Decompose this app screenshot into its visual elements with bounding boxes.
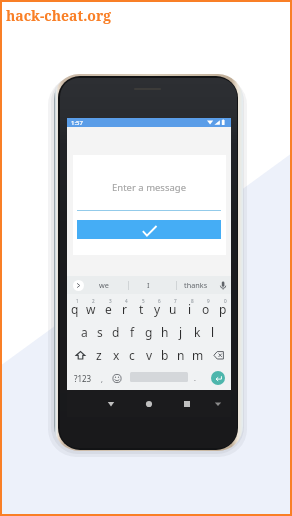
staticText: h <box>161 324 169 340</box>
staticText: 6 <box>158 298 161 304</box>
button[interactable]: d <box>108 320 124 344</box>
staticText: k <box>194 324 201 340</box>
staticText: n <box>177 347 185 363</box>
button[interactable]: Home <box>141 396 157 412</box>
button[interactable]: Shift <box>70 344 91 367</box>
button[interactable]: Backspace <box>208 344 229 367</box>
staticText: 1:57 <box>71 119 83 127</box>
button[interactable]: 0 <box>215 296 231 320</box>
staticText: 2 <box>92 298 95 304</box>
staticText: d <box>112 324 120 340</box>
staticText: 4 <box>125 298 128 304</box>
staticText: , <box>101 375 103 385</box>
button[interactable]: l <box>205 320 221 344</box>
button[interactable]: I <box>126 276 170 294</box>
button[interactable]: h <box>157 320 173 344</box>
button[interactable]: 5 <box>133 296 149 320</box>
button[interactable]: b <box>157 343 173 367</box>
button[interactable]: c <box>124 343 140 367</box>
staticText: . <box>194 374 196 384</box>
staticText: b <box>161 347 169 363</box>
button[interactable]: x <box>108 343 124 367</box>
button[interactable]: z <box>91 343 107 367</box>
button[interactable]: Back <box>103 396 119 412</box>
staticText: g <box>145 324 153 340</box>
button[interactable]: 7 <box>165 296 181 320</box>
staticText: v <box>146 347 153 363</box>
button[interactable]: Recent apps <box>179 396 195 412</box>
staticText: a <box>81 324 88 340</box>
staticText: 0 <box>224 298 227 304</box>
button[interactable]: 6 <box>149 296 165 320</box>
button[interactable]: Hide keyboard <box>210 396 226 412</box>
staticText: 8 <box>191 298 194 304</box>
button[interactable]: 8 <box>182 296 198 320</box>
staticText: t <box>139 301 144 317</box>
staticText: 3 <box>109 298 112 304</box>
button[interactable]: , <box>96 366 108 390</box>
button[interactable]: 1 <box>67 296 83 320</box>
staticText: y <box>154 301 161 317</box>
staticText: f <box>130 324 135 340</box>
button[interactable]: thanks <box>174 276 218 294</box>
staticText: z <box>96 347 102 363</box>
staticText: u <box>169 301 177 317</box>
button[interactable]: 4 <box>116 296 132 320</box>
staticText: e <box>105 301 112 317</box>
button[interactable]: 3 <box>100 296 116 320</box>
staticText: l <box>211 324 215 340</box>
staticText: r <box>122 301 127 317</box>
staticText: 7 <box>174 298 177 304</box>
staticText: Enter a message <box>112 181 187 194</box>
button[interactable]: k <box>189 320 205 344</box>
staticText: ?123 <box>74 373 92 384</box>
button[interactable]: Enter <box>211 371 225 385</box>
button[interactable]: . <box>189 366 201 390</box>
button[interactable]: Send message <box>77 220 221 239</box>
staticText: we <box>99 280 109 290</box>
button[interactable]: j <box>173 320 189 344</box>
staticText: 9 <box>207 298 210 304</box>
button[interactable]: ?123 <box>71 366 94 390</box>
staticText: o <box>202 301 210 317</box>
staticText: m <box>192 347 204 363</box>
button[interactable]: Emoji <box>109 366 125 390</box>
button[interactable]: f <box>124 320 140 344</box>
staticText: q <box>71 301 79 317</box>
button[interactable]: 2 <box>83 296 99 320</box>
button[interactable]: v <box>141 343 157 367</box>
button[interactable]: n <box>173 343 189 367</box>
staticText: I <box>147 280 150 290</box>
button[interactable]: m <box>190 343 206 367</box>
button[interactable]: s <box>92 320 108 344</box>
staticText: s <box>97 324 103 340</box>
button[interactable]: Voice input <box>217 279 229 291</box>
staticText: 1 <box>76 298 79 304</box>
button[interactable]: we <box>82 276 126 294</box>
staticText: i <box>188 301 192 317</box>
button[interactable]: 9 <box>198 296 214 320</box>
staticText: w <box>86 301 96 317</box>
staticText: j <box>179 324 183 340</box>
staticText: hack-cheat.org <box>6 6 112 25</box>
staticText: c <box>129 347 135 363</box>
staticText: p <box>219 301 227 317</box>
button[interactable]: More suggestions <box>73 280 84 291</box>
staticText: x <box>113 347 120 363</box>
button[interactable]: a <box>76 320 92 344</box>
staticText: 5 <box>142 298 145 304</box>
button[interactable]: g <box>141 320 157 344</box>
staticText: thanks <box>184 280 208 290</box>
